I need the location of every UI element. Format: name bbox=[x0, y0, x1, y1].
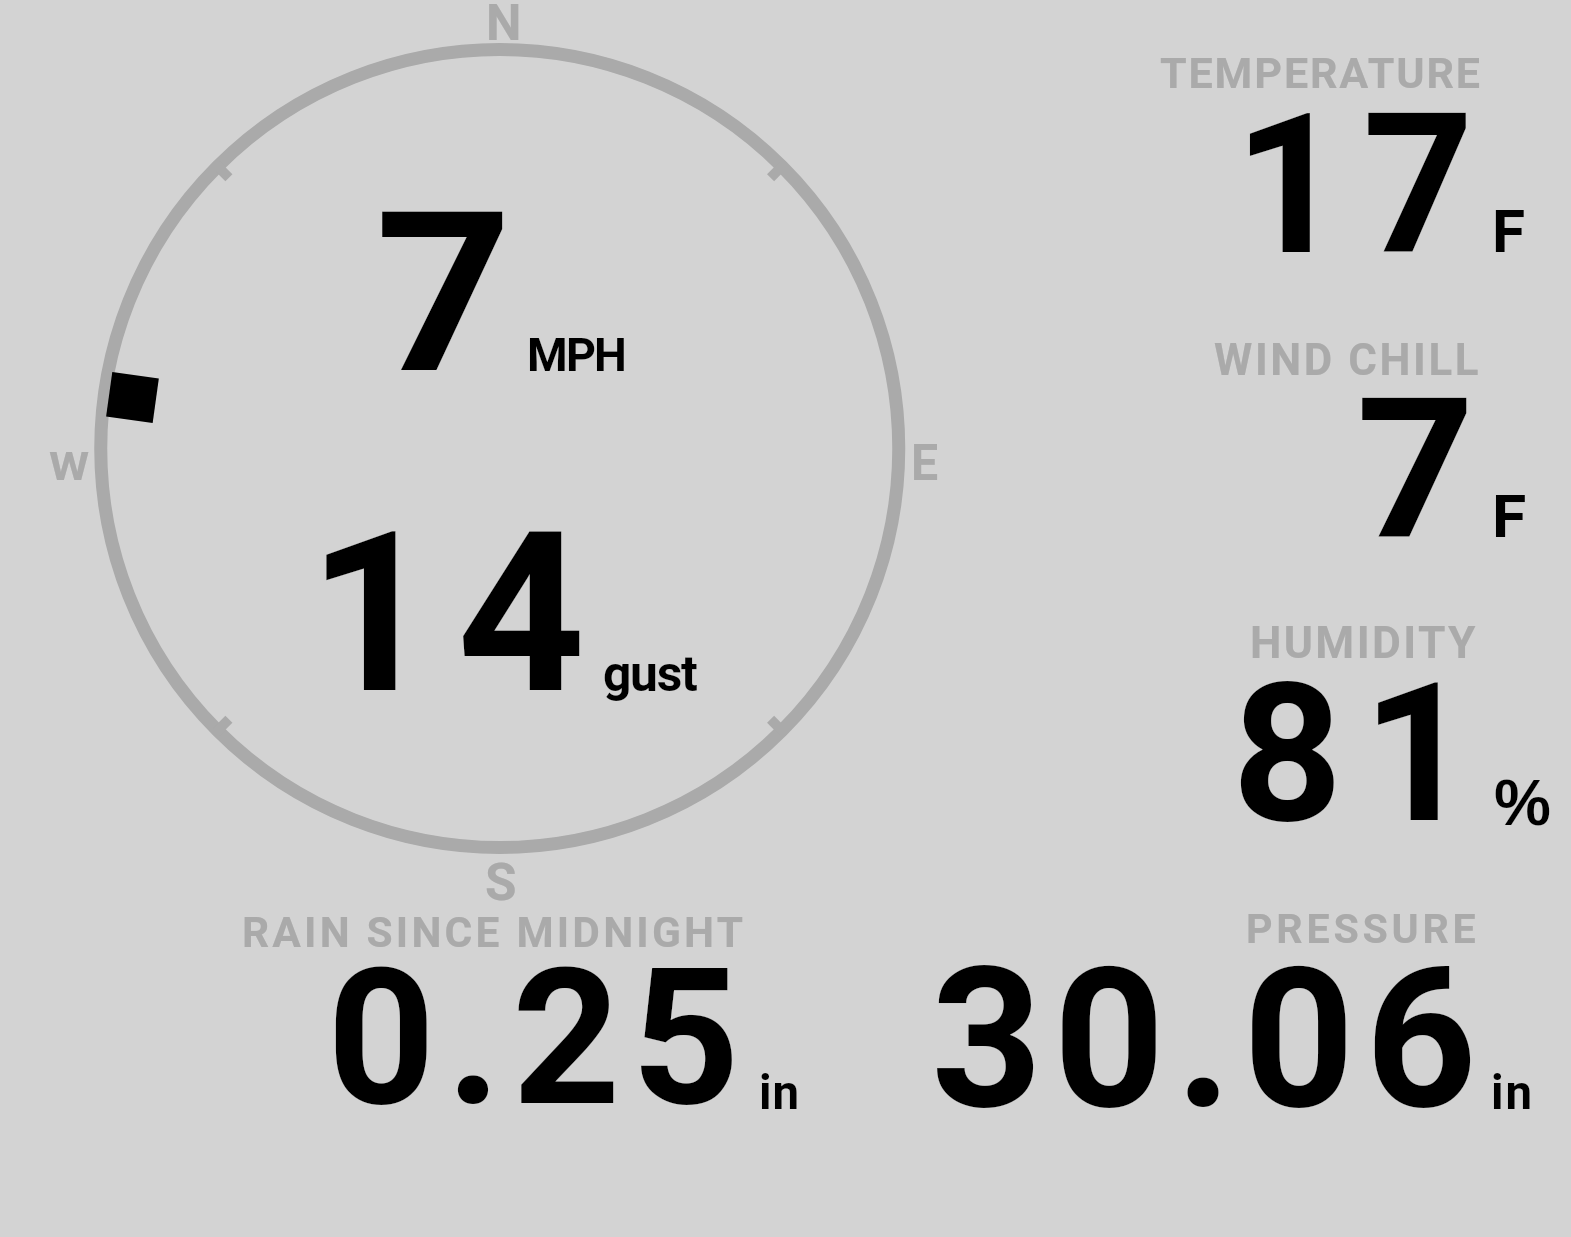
staticText: TEMPERATURE bbox=[1160, 48, 1482, 99]
button[interactable]: Humidity 81 percent bbox=[1230, 614, 1560, 829]
staticText: F bbox=[1492, 482, 1527, 551]
staticText: 17 bbox=[1234, 72, 1492, 284]
staticText: 7 bbox=[1356, 357, 1475, 569]
button[interactable]: Gusting to 14 miles per hour bbox=[300, 478, 710, 708]
staticText: HUMIDITY bbox=[1250, 617, 1478, 669]
button[interactable]: Wind speed 7 miles per hour bbox=[370, 160, 640, 375]
staticText: % bbox=[1494, 767, 1551, 839]
button[interactable]: Temperature 17 degrees Fahrenheit bbox=[1150, 44, 1560, 256]
staticText: 7 bbox=[375, 164, 512, 379]
staticText: WIND CHILL bbox=[1214, 334, 1482, 385]
staticText: F bbox=[1492, 197, 1526, 266]
button[interactable]: Rain since midnight 0.25 inches bbox=[238, 904, 818, 1116]
staticText: 14 bbox=[308, 483, 606, 713]
staticText: 30.06 bbox=[931, 926, 1488, 1138]
staticText: N bbox=[486, 0, 522, 52]
staticText: 81 bbox=[1232, 641, 1493, 856]
staticText: in bbox=[759, 1065, 800, 1121]
button[interactable]: Pressure 30.06 inches of mercury bbox=[925, 902, 1560, 1114]
staticText: 0.25 bbox=[327, 928, 751, 1140]
button[interactable]: Wind chill 7 degrees Fahrenheit bbox=[1205, 330, 1560, 542]
staticText: in bbox=[1491, 1065, 1534, 1121]
staticText: E bbox=[911, 433, 939, 492]
staticText: W bbox=[49, 445, 90, 490]
staticText: S bbox=[485, 852, 517, 913]
staticText: RAIN SINCE MIDNIGHT bbox=[242, 908, 747, 958]
staticText: MPH bbox=[527, 328, 626, 382]
staticText: gust bbox=[603, 645, 697, 703]
staticText: PRESSURE bbox=[1246, 905, 1480, 953]
button[interactable]: Wind direction compass, west north-west bbox=[84, 33, 916, 865]
